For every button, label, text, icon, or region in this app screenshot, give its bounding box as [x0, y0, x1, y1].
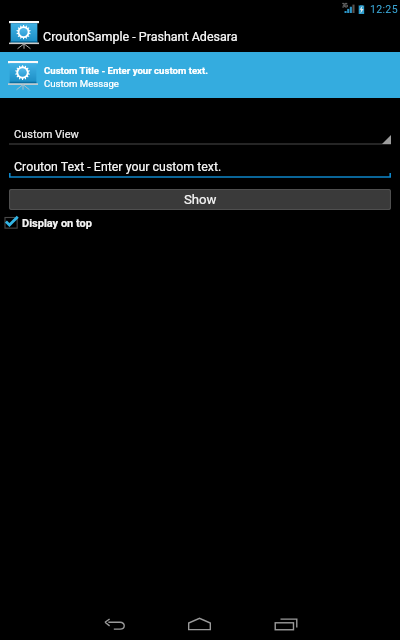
button[interactable]: Custom View	[9, 120, 391, 146]
staticText: Custom Title - Enter your custom text.	[44, 65, 208, 76]
staticText: Crouton Text - Enter your custom text.	[14, 159, 222, 174]
staticText: Show	[184, 192, 217, 207]
button[interactable]: Crouton Text - Enter your custom text.	[9, 157, 391, 178]
button[interactable]: Show	[9, 189, 391, 210]
button[interactable]: Custom Title - Enter your custom text.	[0, 52, 400, 98]
button[interactable]: Recent apps	[250, 608, 322, 640]
staticText: CroutonSample - Prashant Adesara	[43, 29, 238, 44]
button[interactable]: Home	[163, 608, 235, 640]
button[interactable]: Display on top	[4, 213, 92, 233]
button[interactable]: Back	[79, 608, 151, 640]
staticText: Custom View	[14, 128, 79, 141]
staticText: Custom Message	[44, 78, 119, 89]
staticText: Display on top	[22, 217, 92, 230]
staticText: 12:25	[370, 3, 398, 15]
